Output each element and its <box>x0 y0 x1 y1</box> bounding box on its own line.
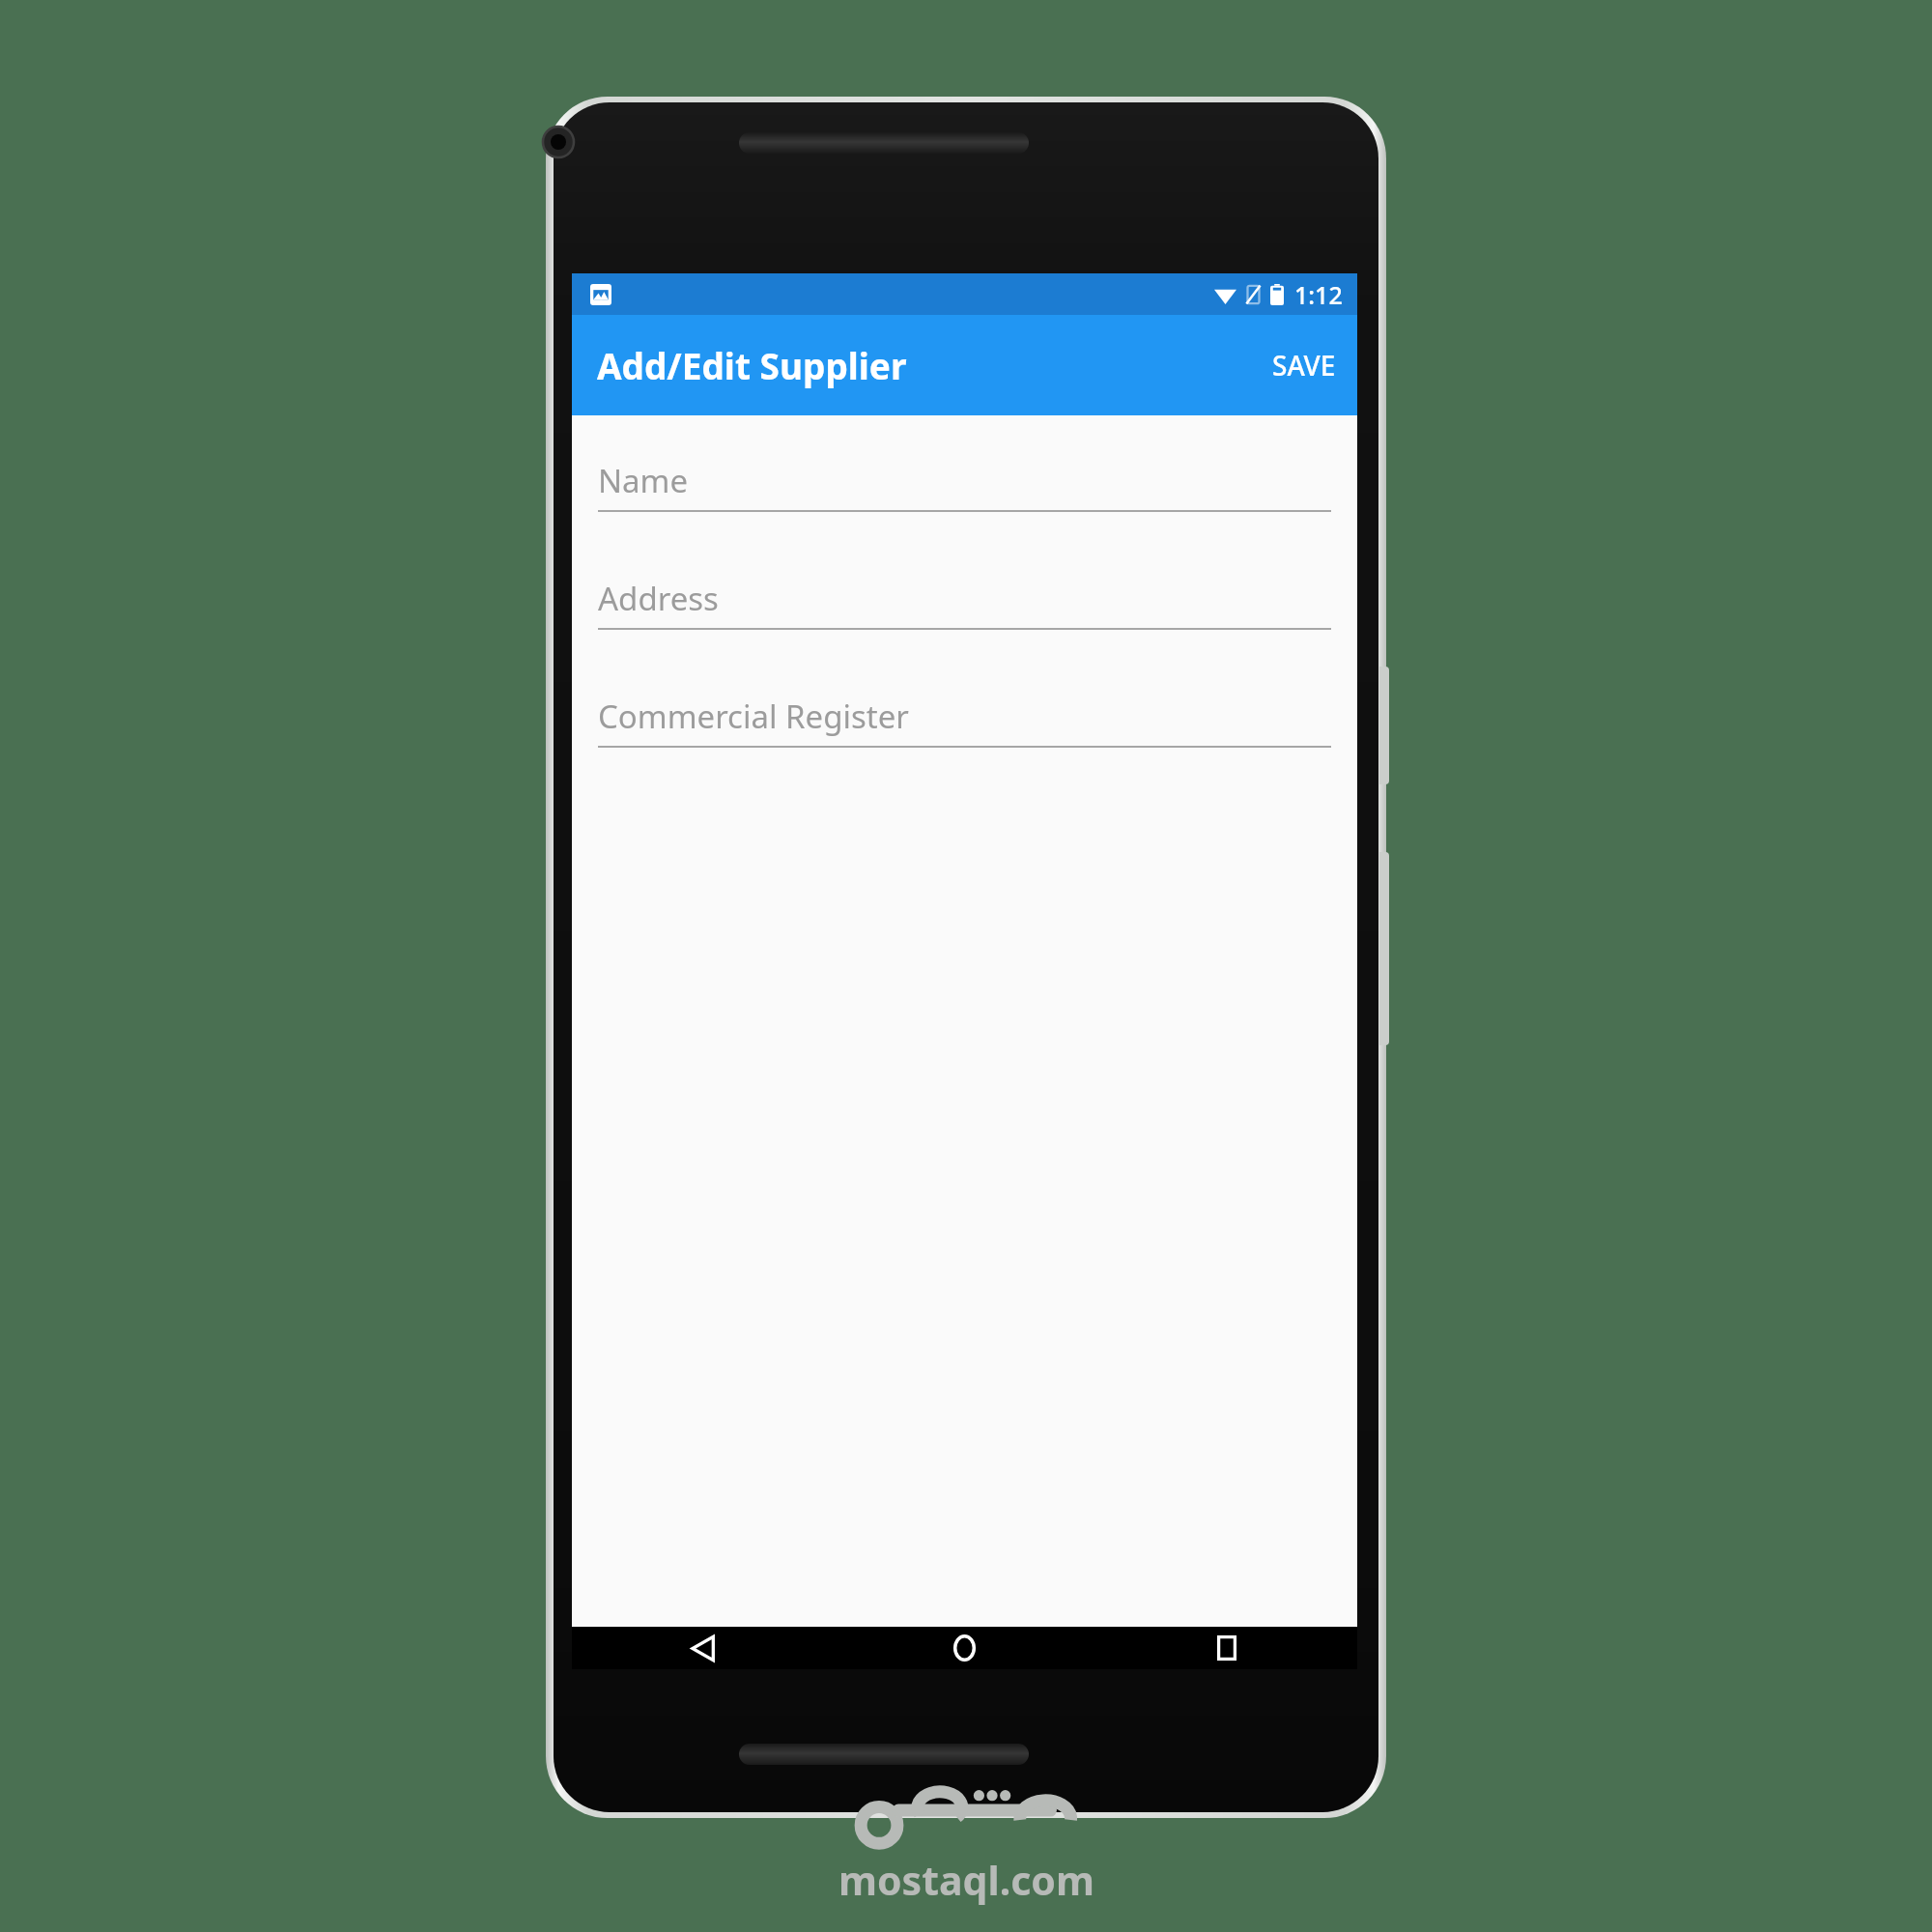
button[interactable]: Name <box>598 450 1331 568</box>
button[interactable]: Commercial Register <box>598 686 1331 804</box>
button[interactable]: Recent apps <box>1095 1627 1357 1669</box>
button[interactable]: Address <box>598 568 1331 686</box>
staticText: Address <box>598 577 719 620</box>
button[interactable]: SAVE <box>1251 324 1357 407</box>
button[interactable]: Back <box>572 1627 834 1669</box>
staticText: Name <box>598 459 689 502</box>
button[interactable]: Home <box>834 1627 1095 1669</box>
staticText: 1:12 <box>1294 278 1343 311</box>
staticText: SAVE <box>1272 347 1336 384</box>
staticText: Add/Edit Supplier <box>597 341 907 389</box>
staticText: Commercial Register <box>598 695 909 738</box>
staticText: mostaql.com <box>838 1853 1094 1907</box>
